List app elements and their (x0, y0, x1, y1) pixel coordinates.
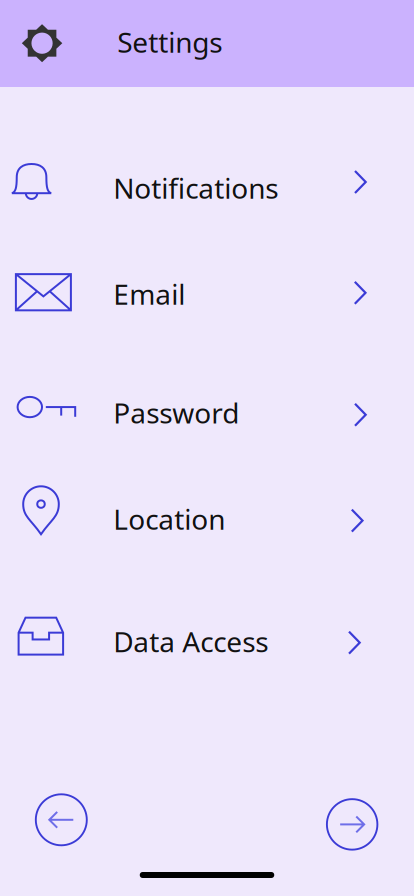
button[interactable]: Password (0, 347, 414, 466)
button[interactable]: Next page (320, 792, 384, 857)
staticText: Email (113, 275, 185, 312)
staticText: Data Access (113, 623, 268, 660)
button[interactable]: Location (0, 466, 414, 572)
button[interactable]: Data Access (0, 572, 414, 695)
staticText: Location (113, 500, 225, 537)
staticText: Notifications (113, 169, 278, 206)
staticText: Password (113, 394, 239, 431)
staticText: Settings (117, 23, 222, 61)
button[interactable]: Notifications (0, 134, 414, 241)
button[interactable]: Email (0, 241, 414, 347)
button[interactable]: Previous page (29, 787, 94, 852)
button[interactable]: Settings (0, 0, 62, 62)
